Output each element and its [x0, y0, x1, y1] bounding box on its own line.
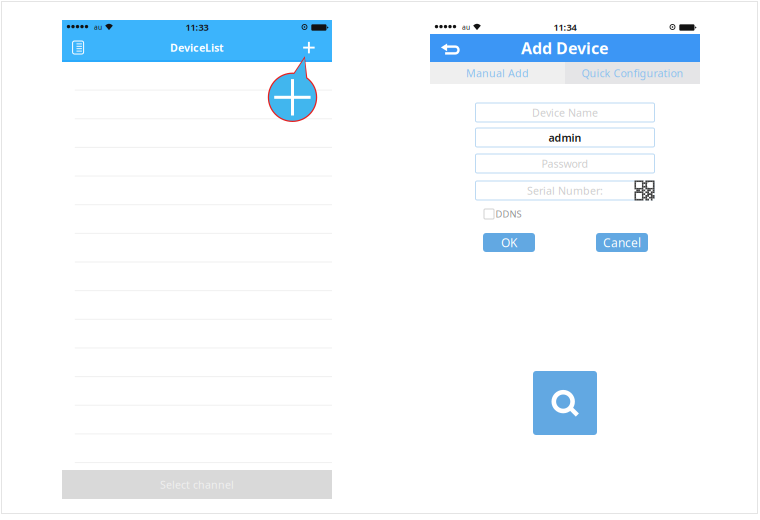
button[interactable]: Devices	[73, 41, 84, 54]
button[interactable]: Cancel	[596, 233, 648, 252]
staticText: DDNS	[495, 208, 521, 220]
staticText: Password	[541, 156, 588, 171]
staticText: 11:34	[553, 21, 576, 33]
staticText: au	[94, 23, 102, 32]
button[interactable]: Back	[440, 38, 462, 58]
staticText: Device Name	[532, 105, 598, 120]
staticText: Manual Add	[466, 66, 529, 80]
button[interactable]: Quick Configuration	[565, 62, 700, 84]
button[interactable]: Manual Add	[430, 62, 565, 84]
button[interactable]: OK	[483, 233, 535, 252]
staticText: au	[462, 23, 470, 32]
staticText: Add Device	[521, 37, 609, 59]
staticText: OK	[501, 234, 517, 250]
staticText: Select channel	[160, 477, 234, 492]
staticText: Cancel	[603, 234, 641, 250]
button[interactable]: DDNS	[484, 208, 544, 220]
staticText: DeviceList	[170, 40, 224, 55]
button[interactable]: Search	[533, 371, 597, 435]
button[interactable]: Scan serial number	[634, 180, 654, 200]
button[interactable]: Add device	[303, 42, 315, 53]
staticText: Serial Number:	[527, 183, 603, 198]
staticText: 11:33	[185, 21, 208, 33]
staticText: Quick Configuration	[581, 66, 683, 80]
staticText: admin	[548, 130, 581, 145]
